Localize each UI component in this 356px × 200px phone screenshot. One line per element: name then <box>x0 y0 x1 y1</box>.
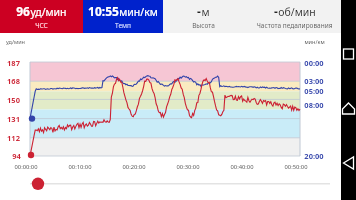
button[interactable]: Home <box>341 89 356 129</box>
staticText: мин/км <box>119 5 158 19</box>
staticText: 00:20:00 <box>122 163 146 171</box>
staticText: 00:50:00 <box>284 163 308 171</box>
staticText: 00:40:00 <box>230 163 254 171</box>
staticText: - <box>197 3 201 19</box>
staticText: 00:00:00 <box>14 163 38 171</box>
staticText: уд/мин <box>30 5 67 19</box>
staticText: Темп <box>115 21 131 30</box>
staticText: 10:55 <box>88 3 119 19</box>
button[interactable]: - <box>163 0 243 33</box>
button[interactable]: Back <box>341 143 356 183</box>
button[interactable]: 96 <box>0 0 83 33</box>
staticText: ЧСС <box>35 21 48 30</box>
staticText: 05:00 <box>304 86 324 96</box>
staticText: 96 <box>16 3 30 19</box>
button[interactable]: Recent apps <box>341 40 356 80</box>
button[interactable]: - <box>243 0 345 33</box>
staticText: Частота педалирования <box>256 21 333 30</box>
staticText: 112 <box>7 133 20 143</box>
button[interactable] <box>0 172 356 200</box>
staticText: Высота <box>192 21 215 30</box>
staticText: об/мин <box>278 5 316 19</box>
staticText: 94 <box>12 151 21 161</box>
staticText: 20:00 <box>304 151 324 161</box>
staticText: - <box>274 3 278 19</box>
button[interactable]: 10:55 <box>83 0 163 33</box>
staticText: 00:30:00 <box>176 163 200 171</box>
staticText: уд/мин <box>6 38 25 45</box>
staticText: 131 <box>7 114 20 124</box>
staticText: 00:10:00 <box>68 163 92 171</box>
staticText: мин/км <box>304 38 325 45</box>
staticText: 187 <box>7 58 20 68</box>
staticText: 03:00 <box>304 76 324 86</box>
staticText: м <box>201 5 210 19</box>
staticText: 08:00 <box>304 100 324 110</box>
staticText: 150 <box>7 95 20 105</box>
staticText: 168 <box>7 76 20 86</box>
staticText: 00:00 <box>304 58 324 68</box>
